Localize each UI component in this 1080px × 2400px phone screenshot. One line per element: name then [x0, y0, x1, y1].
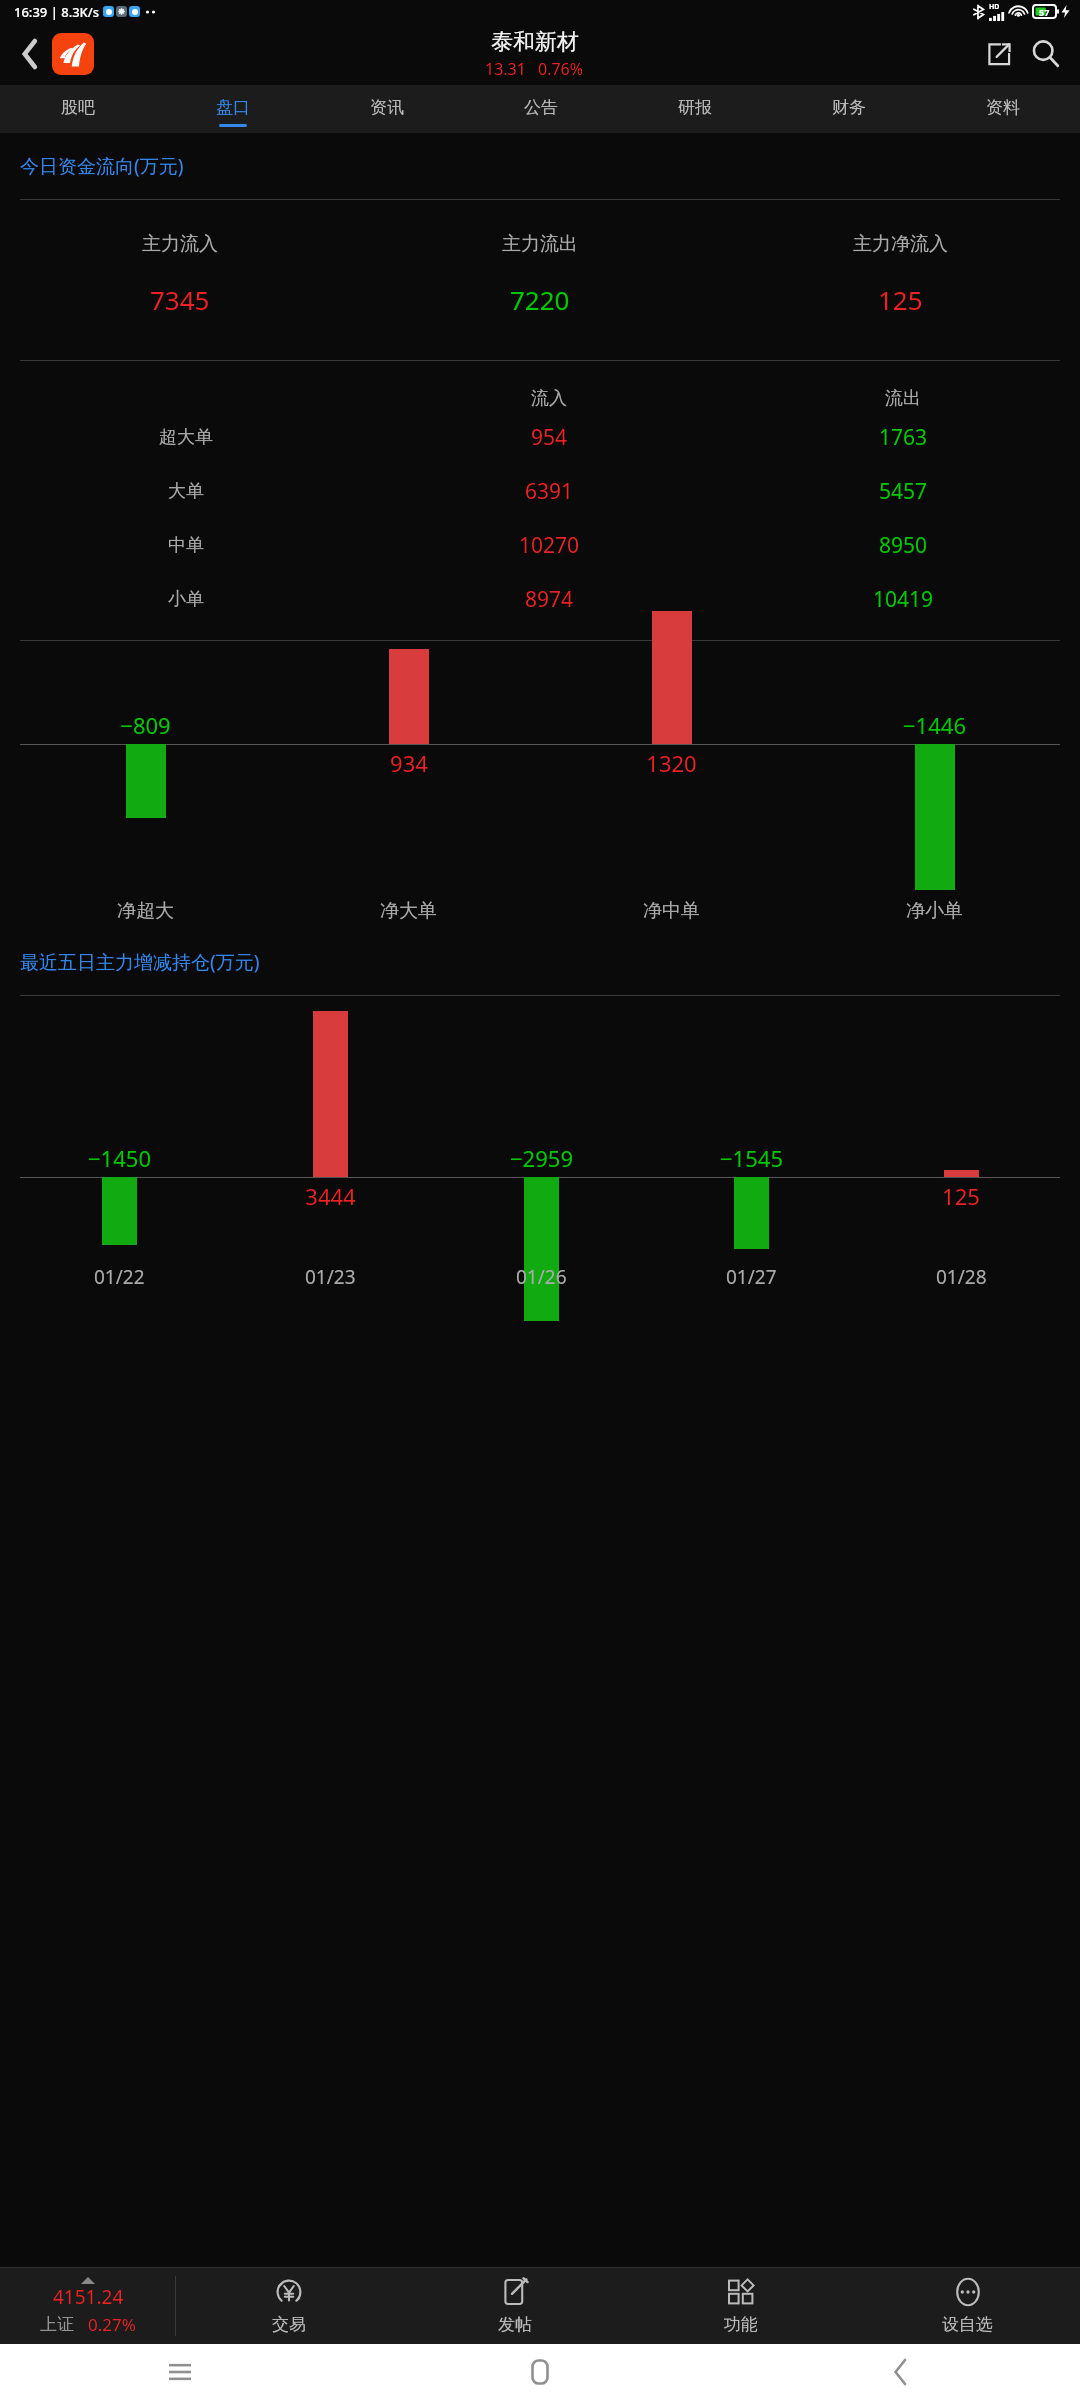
staticText: 10419: [873, 585, 934, 614]
staticText: 10270: [519, 531, 580, 560]
staticText: −1545: [720, 1143, 783, 1173]
staticText: 今日资金流向(万元): [20, 153, 184, 179]
staticText: 流出: [885, 387, 921, 410]
staticText: 盘口: [216, 97, 250, 118]
button[interactable]: 资讯: [310, 85, 464, 133]
staticText: 最近五日主力增减持仓(万元): [20, 949, 260, 975]
staticText: −809: [120, 710, 171, 740]
button[interactable]: App logo: [52, 33, 94, 75]
staticText: 1763: [879, 423, 928, 452]
button[interactable]: Home: [360, 2344, 720, 2400]
staticText: 125: [878, 282, 923, 317]
staticText: 净大单: [380, 899, 437, 923]
staticText: 57: [1039, 6, 1050, 18]
staticText: 净超大: [117, 899, 174, 923]
button[interactable]: 研报: [618, 85, 772, 133]
staticText: 7345: [150, 282, 210, 317]
staticText: −1450: [88, 1143, 151, 1173]
button[interactable]: 发帖: [402, 2268, 628, 2344]
button[interactable]: 盘口: [155, 85, 310, 133]
staticText: 上证: [40, 2314, 74, 2335]
button[interactable]: 设自选: [854, 2268, 1080, 2344]
button[interactable]: 财务: [772, 85, 926, 133]
staticText: 财务: [832, 97, 866, 118]
staticText: 中单: [168, 534, 204, 557]
button[interactable]: 功能: [628, 2268, 854, 2344]
staticText: 934: [390, 748, 428, 778]
staticText: 01/27: [726, 1264, 777, 1290]
staticText: 4151.24: [53, 2284, 124, 2310]
staticText: 01/28: [936, 1264, 987, 1290]
staticText: 流入: [531, 387, 567, 410]
staticText: 16:39 | 8.3K/s: [14, 3, 100, 21]
staticText: 净中单: [643, 899, 700, 923]
staticText: HD: [989, 2, 1000, 12]
staticText: 954: [531, 423, 568, 452]
staticText: 125: [942, 1181, 980, 1211]
staticText: 01/26: [516, 1264, 567, 1290]
staticText: 大单: [168, 480, 204, 503]
staticText: 6391: [525, 477, 574, 506]
staticText: 8974: [525, 585, 574, 614]
staticText: 7220: [510, 282, 570, 317]
staticText: 泰和新材: [491, 28, 579, 56]
button[interactable]: Recent apps: [0, 2344, 360, 2400]
staticText: 发帖: [498, 2314, 532, 2335]
staticText: 5457: [879, 477, 928, 506]
staticText: 超大单: [159, 426, 213, 449]
staticText: 3444: [305, 1181, 356, 1211]
staticText: 公告: [524, 97, 558, 118]
staticText: 净小单: [906, 899, 963, 923]
staticText: 主力流出: [502, 232, 578, 256]
staticText: 0.27%: [88, 2313, 136, 2336]
button[interactable]: 交易: [176, 2268, 402, 2344]
staticText: 8950: [879, 531, 928, 560]
staticText: 01/23: [305, 1264, 356, 1290]
button[interactable]: Search: [1022, 30, 1070, 78]
staticText: 小单: [168, 588, 204, 611]
button[interactable]: Back: [10, 34, 50, 74]
staticText: 资料: [986, 97, 1020, 118]
staticText: 功能: [724, 2314, 758, 2335]
staticText: −1446: [903, 710, 966, 740]
staticText: 主力净流入: [853, 232, 948, 256]
button[interactable]: 公告: [464, 85, 618, 133]
staticText: 13.31: [485, 58, 526, 80]
staticText: 1320: [646, 748, 697, 778]
staticText: 主力流入: [142, 232, 218, 256]
button[interactable]: 4151.24: [0, 2268, 175, 2344]
staticText: 交易: [272, 2314, 306, 2335]
staticText: 01/22: [94, 1264, 145, 1290]
staticText: 资讯: [370, 97, 404, 118]
staticText: 设自选: [942, 2314, 993, 2335]
staticText: 股吧: [61, 97, 95, 118]
staticText: 0.76%: [538, 58, 584, 80]
staticText: 研报: [678, 97, 712, 118]
button[interactable]: Share: [976, 31, 1022, 77]
button[interactable]: Back: [720, 2344, 1080, 2400]
button[interactable]: 股吧: [0, 85, 155, 133]
button[interactable]: 资料: [926, 85, 1080, 133]
staticText: −2959: [510, 1143, 573, 1173]
